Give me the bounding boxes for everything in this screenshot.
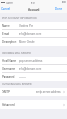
button[interactable]: Description [0,38,67,46]
staticText: info@domain.com [19,67,42,71]
staticText: pop.server.address [19,59,43,63]
staticText: Advanced [2,103,15,107]
staticText: 9:41 [31,1,36,4]
staticText: Done [55,7,63,11]
button[interactable]: Done [53,6,67,12]
staticText: Name [2,24,10,28]
button[interactable]: Password [0,73,67,81]
staticText: smtp.server.address [36,90,61,94]
staticText: Mone Onsite [19,40,35,44]
staticText: INCOMING MAIL SERVER [2,51,31,54]
staticText: Cancel [1,7,11,11]
button[interactable]: Name [0,22,67,30]
button[interactable]: Host Name [0,57,67,65]
staticText: Carrier [6,1,13,4]
button[interactable]: Cancel [0,6,13,12]
staticText: SMTP [2,90,10,94]
staticText: OUTGOING MAIL SERVER [2,82,32,85]
staticText: POP ACCOUNT INFORMATION [2,16,37,19]
staticText: info@domain.com [19,32,42,36]
staticText: Host Name [2,59,17,63]
button[interactable]: SMTP [0,88,67,96]
button[interactable]: Advanced [0,100,67,109]
staticText: ••••••• [19,75,26,79]
staticText: Password [2,75,15,79]
staticText: Username [2,67,16,71]
staticText: Account [28,7,40,12]
button[interactable]: Email [0,30,67,38]
staticText: Email [2,32,10,36]
button[interactable]: Username [0,65,67,73]
staticText: Description [2,40,17,44]
staticText: Voiders Pie [19,24,33,28]
